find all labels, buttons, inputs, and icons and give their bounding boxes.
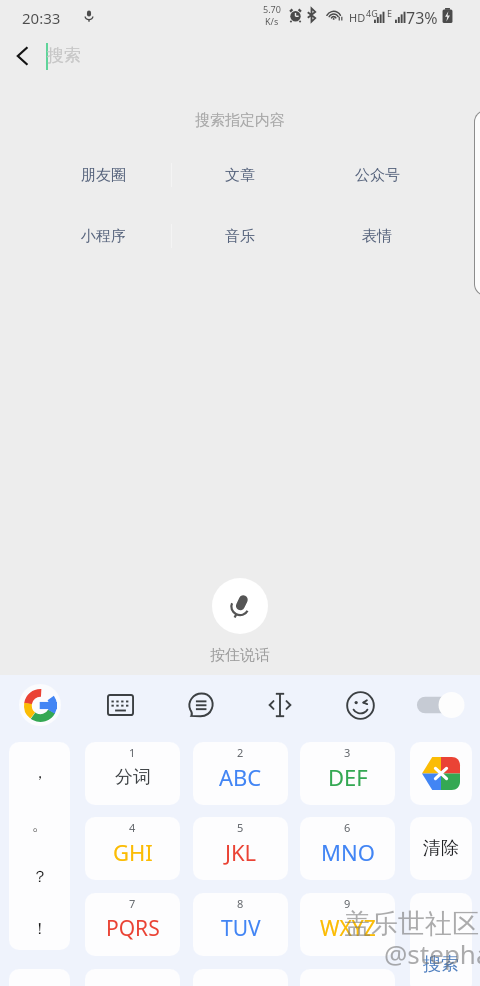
staticText: MNO — [321, 837, 375, 867]
staticText: 搜索 — [47, 45, 81, 66]
staticText: 20:33 — [22, 8, 61, 28]
staticText: 3 — [344, 745, 351, 760]
button[interactable]: 3 — [300, 742, 395, 805]
staticText: K/s — [265, 15, 279, 27]
staticText: 分词 — [115, 766, 151, 789]
button[interactable]: 小程序 — [59, 222, 147, 250]
staticText: ， — [32, 763, 48, 783]
button[interactable]: Back — [0, 34, 44, 78]
staticText: 盖乐世社区 — [344, 907, 479, 941]
button[interactable]: 7 — [85, 893, 180, 956]
staticText: WXYZ — [320, 914, 376, 943]
staticText: 搜索 — [423, 953, 459, 976]
button[interactable]: ， — [9, 742, 70, 950]
staticText: 5.70 — [263, 3, 281, 15]
staticText: DEF — [328, 762, 368, 792]
staticText: 搜索指定内容 — [195, 111, 285, 130]
staticText: 7 — [129, 896, 136, 911]
staticText: E — [387, 7, 393, 19]
button[interactable]: Messages — [160, 675, 240, 735]
staticText: 1 — [129, 745, 136, 760]
button[interactable] — [410, 742, 472, 805]
staticText: JKL — [225, 837, 257, 867]
staticText: TUV — [221, 914, 261, 943]
staticText: 9 — [344, 896, 351, 911]
button[interactable]: 1 — [85, 742, 180, 805]
button[interactable]: 搜索 — [410, 893, 472, 986]
button[interactable]: 表情 — [333, 222, 421, 250]
button[interactable]: 9 — [300, 893, 395, 956]
button[interactable]: Toggle one-hand mode — [400, 675, 480, 735]
staticText: 小程序 — [81, 227, 126, 246]
staticText: 。 — [32, 815, 48, 835]
button[interactable]: 2 — [193, 742, 288, 805]
button[interactable]: 6 — [300, 817, 395, 880]
staticText: 73% — [406, 7, 438, 29]
button[interactable]: 公众号 — [333, 161, 421, 189]
staticText: 6 — [344, 820, 351, 835]
staticText: PQRS — [106, 914, 160, 943]
button[interactable]: 5 — [193, 817, 288, 880]
staticText: 公众号 — [355, 166, 400, 185]
staticText: ！ — [32, 919, 48, 939]
staticText: 音乐 — [225, 227, 255, 246]
button[interactable]: 4 — [85, 817, 180, 880]
staticText: 4G — [366, 7, 378, 19]
button[interactable]: Keyboard — [80, 675, 160, 735]
staticText: GHI — [113, 837, 153, 867]
staticText: 文章 — [225, 166, 255, 185]
staticText: @stepha — [384, 936, 480, 971]
staticText: 2 — [237, 745, 244, 760]
staticText: 朋友圈 — [81, 166, 126, 185]
button[interactable]: Cursor — [240, 675, 320, 735]
button[interactable]: 8 — [193, 893, 288, 956]
button[interactable]: Emoji — [320, 675, 400, 735]
staticText: 表情 — [362, 227, 392, 246]
staticText: HD — [349, 10, 366, 25]
button[interactable]: Hold to talk — [212, 578, 268, 634]
button[interactable]: 文章 — [196, 161, 284, 189]
staticText: ？ — [32, 867, 48, 887]
staticText: 按住说话 — [210, 646, 270, 665]
staticText: 5 — [237, 820, 244, 835]
staticText: 4 — [129, 820, 136, 835]
button[interactable]: 朋友圈 — [59, 161, 147, 189]
staticText: ABC — [219, 762, 262, 792]
button[interactable]: 音乐 — [196, 222, 284, 250]
button[interactable]: 清除 — [410, 817, 472, 880]
button[interactable]: Google — [0, 675, 80, 735]
staticText: 清除 — [423, 837, 459, 860]
staticText: 8 — [237, 896, 244, 911]
